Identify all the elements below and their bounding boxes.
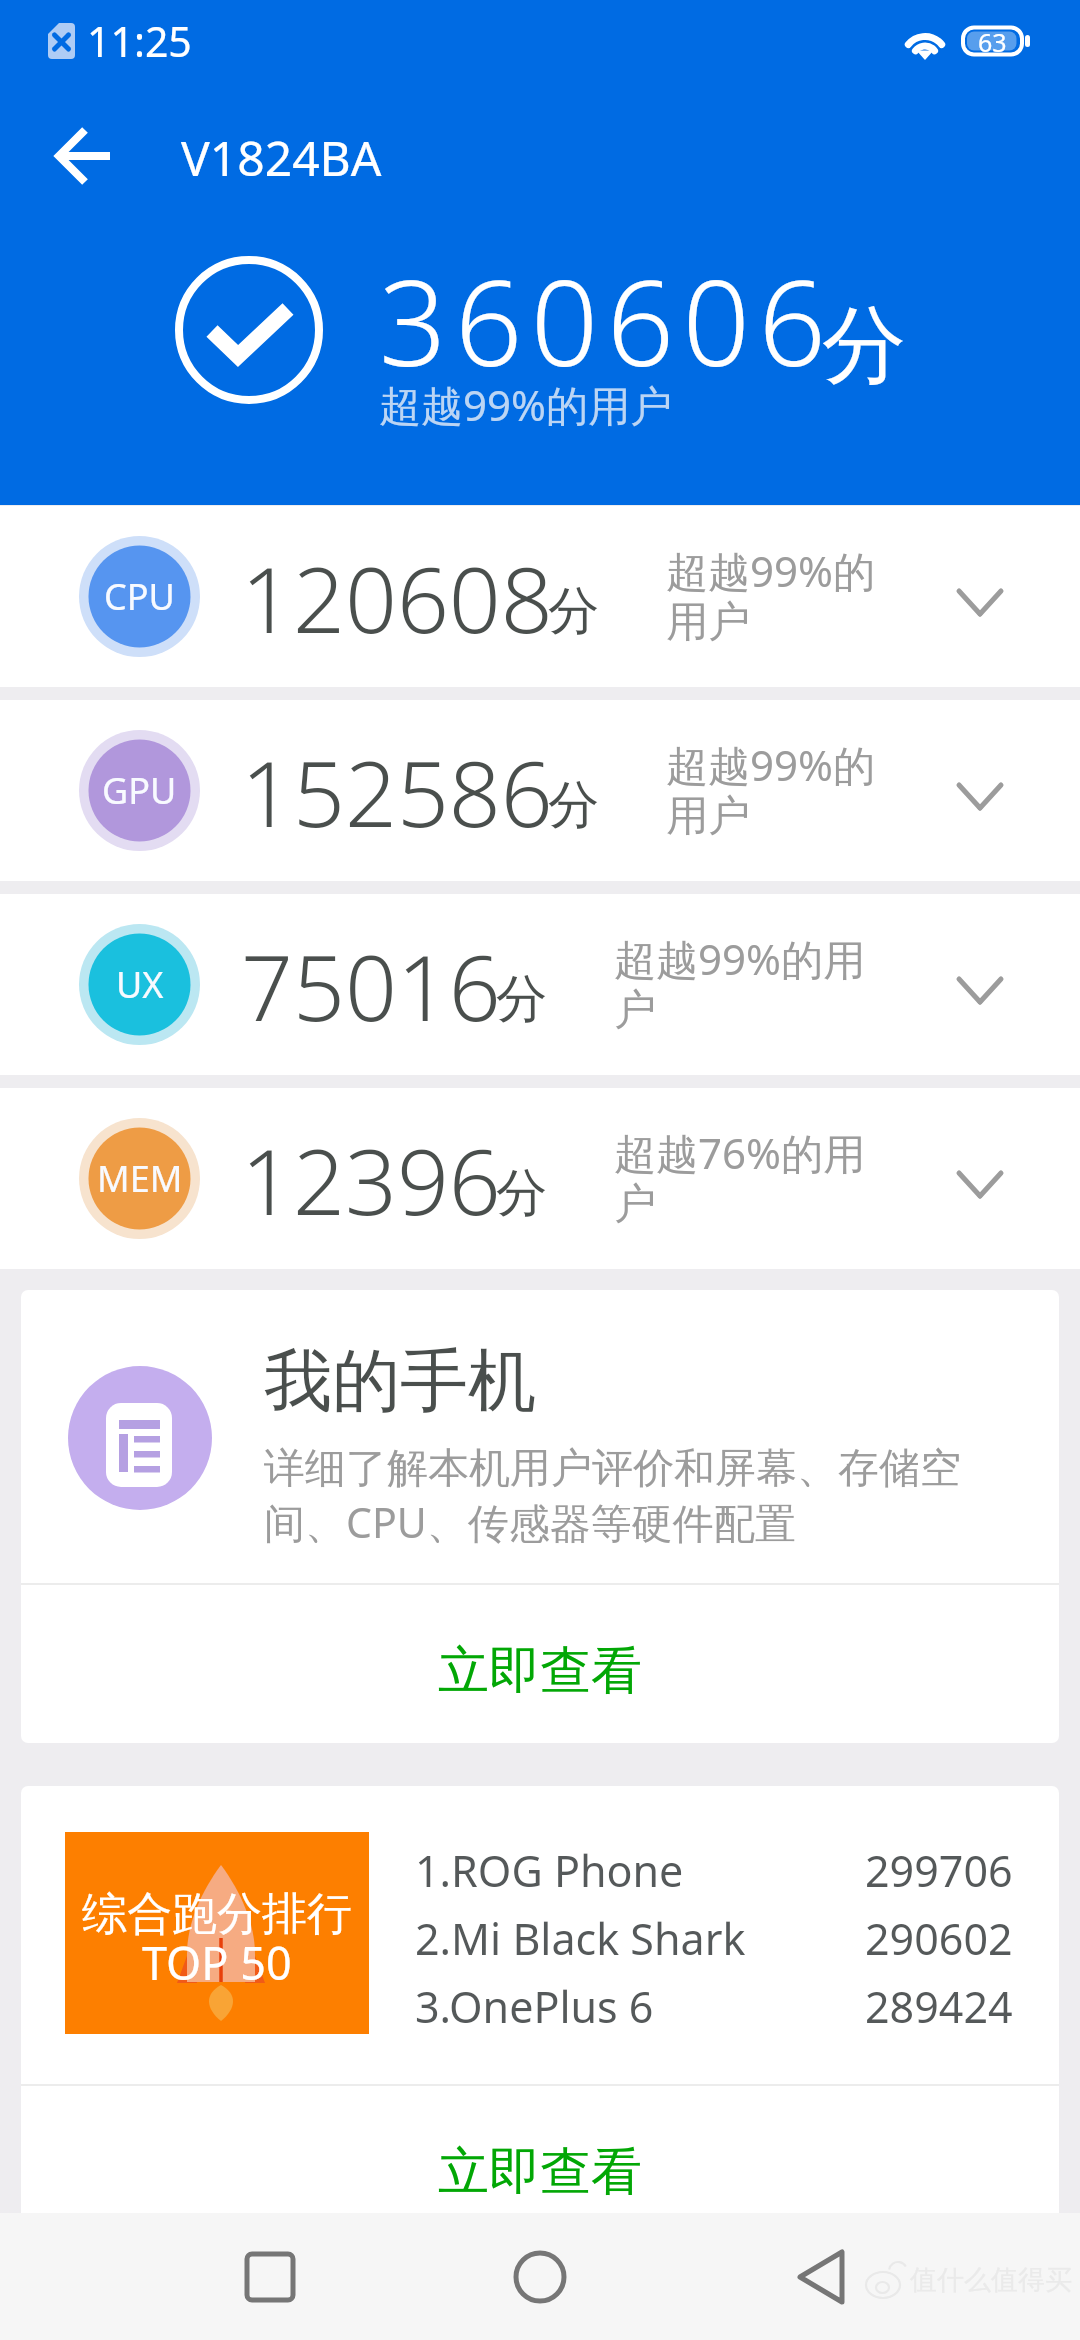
staticText: 超越99%的用户 — [614, 930, 885, 1036]
staticText: 299706 — [865, 1841, 1013, 1900]
staticText: GPU — [102, 766, 177, 815]
staticText: 值什么值得买 — [910, 2263, 1072, 2297]
staticText: 360606 — [379, 240, 835, 401]
button[interactable]: Home — [480, 2232, 600, 2322]
staticText: 分 — [496, 967, 547, 1031]
button[interactable]: 立即查看 — [21, 2086, 1059, 2244]
staticText: CPU — [104, 572, 175, 621]
staticText: 超越99%的用户 — [666, 542, 885, 648]
button[interactable]: GPU — [0, 700, 1080, 881]
staticText: 分 — [548, 773, 599, 837]
staticText: 152586 — [241, 730, 553, 854]
staticText: TOP 50 — [142, 1932, 292, 1993]
staticText: V1824BA — [181, 125, 382, 190]
staticText: MEM — [97, 1154, 183, 1203]
staticText: 11:25 — [87, 13, 192, 69]
staticText: 超越99%的用户 — [666, 736, 885, 842]
staticText: 超越99%的用户 — [379, 376, 672, 433]
staticText: 超越76%的用户 — [614, 1124, 885, 1230]
staticText: 分 — [548, 579, 599, 643]
staticText: 立即查看 — [438, 1639, 642, 1703]
staticText: 12396 — [241, 1118, 501, 1242]
staticText: 3.OnePlus 6 — [415, 1977, 654, 2036]
staticText: 1.ROG Phone — [415, 1841, 684, 1900]
staticText: 详细了解本机用户评价和屏幕、存储空间、CPU、传感器等硬件配置 — [264, 1443, 986, 1550]
staticText: 立即查看 — [438, 2140, 642, 2204]
button[interactable]: Back — [34, 104, 134, 204]
staticText: UX — [116, 960, 164, 1009]
button[interactable]: Back — [761, 2232, 881, 2322]
button[interactable]: Recent apps — [210, 2232, 330, 2322]
staticText: 75016 — [241, 924, 501, 1048]
staticText: 63 — [978, 25, 1007, 55]
staticText: 2.Mi Black Shark — [415, 1909, 746, 1968]
staticText: 290602 — [865, 1909, 1013, 1968]
staticText: 我的手机 — [264, 1339, 536, 1425]
button[interactable]: CPU — [0, 506, 1080, 687]
staticText: 120608 — [241, 536, 553, 660]
button[interactable]: UX — [0, 894, 1080, 1075]
staticText: 综合跑分排行 — [82, 1886, 352, 1943]
staticText: 289424 — [865, 1977, 1013, 2036]
button[interactable]: MEM — [0, 1088, 1080, 1269]
staticText: 分 — [496, 1161, 547, 1225]
button[interactable]: 立即查看 — [21, 1585, 1059, 1743]
staticText: 分 — [822, 293, 906, 399]
